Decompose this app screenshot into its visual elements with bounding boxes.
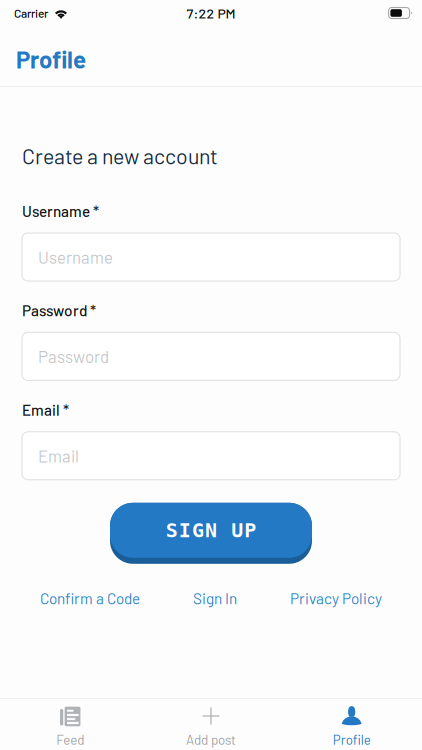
staticText: Privacy Policy bbox=[290, 589, 382, 607]
staticText: Password bbox=[38, 346, 109, 366]
button[interactable]: Profile bbox=[281, 699, 422, 750]
staticText: Profile bbox=[333, 731, 371, 747]
staticText: Sign In bbox=[193, 589, 237, 607]
staticText: Carrier bbox=[14, 6, 48, 20]
button[interactable]: Add post bbox=[141, 699, 281, 750]
staticText: Confirm a Code bbox=[40, 589, 140, 607]
button[interactable]: Privacy Policy bbox=[290, 589, 382, 607]
button[interactable]: Sign In bbox=[193, 589, 237, 607]
staticText: SIGN UP bbox=[166, 519, 256, 542]
button[interactable]: Feed bbox=[0, 699, 141, 750]
staticText: Email * bbox=[22, 400, 69, 419]
staticText: Password * bbox=[22, 301, 96, 319]
button[interactable]: Profile bbox=[16, 45, 86, 73]
button[interactable]: Password bbox=[22, 332, 400, 380]
staticText: Username bbox=[38, 247, 113, 267]
button[interactable]: Confirm a Code bbox=[40, 589, 140, 607]
button[interactable]: SIGN UP bbox=[110, 503, 312, 564]
button[interactable]: Email bbox=[22, 432, 400, 480]
staticText: Feed bbox=[56, 731, 84, 747]
staticText: Create a new account bbox=[22, 143, 218, 169]
staticText: Add post bbox=[186, 731, 236, 747]
staticText: Email bbox=[38, 446, 79, 466]
staticText: Profile bbox=[16, 45, 86, 73]
staticText: Username * bbox=[22, 202, 99, 220]
button[interactable]: Username bbox=[22, 233, 400, 281]
staticText: 7:22 PM bbox=[186, 5, 235, 21]
